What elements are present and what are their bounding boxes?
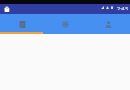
button[interactable]: Open notes [0, 4, 14, 14]
button[interactable]: Schedule [0, 14, 44, 34]
button[interactable]: Explore [44, 14, 87, 34]
staticText: 2:43 [117, 5, 128, 10]
button[interactable]: Profile [87, 14, 130, 34]
